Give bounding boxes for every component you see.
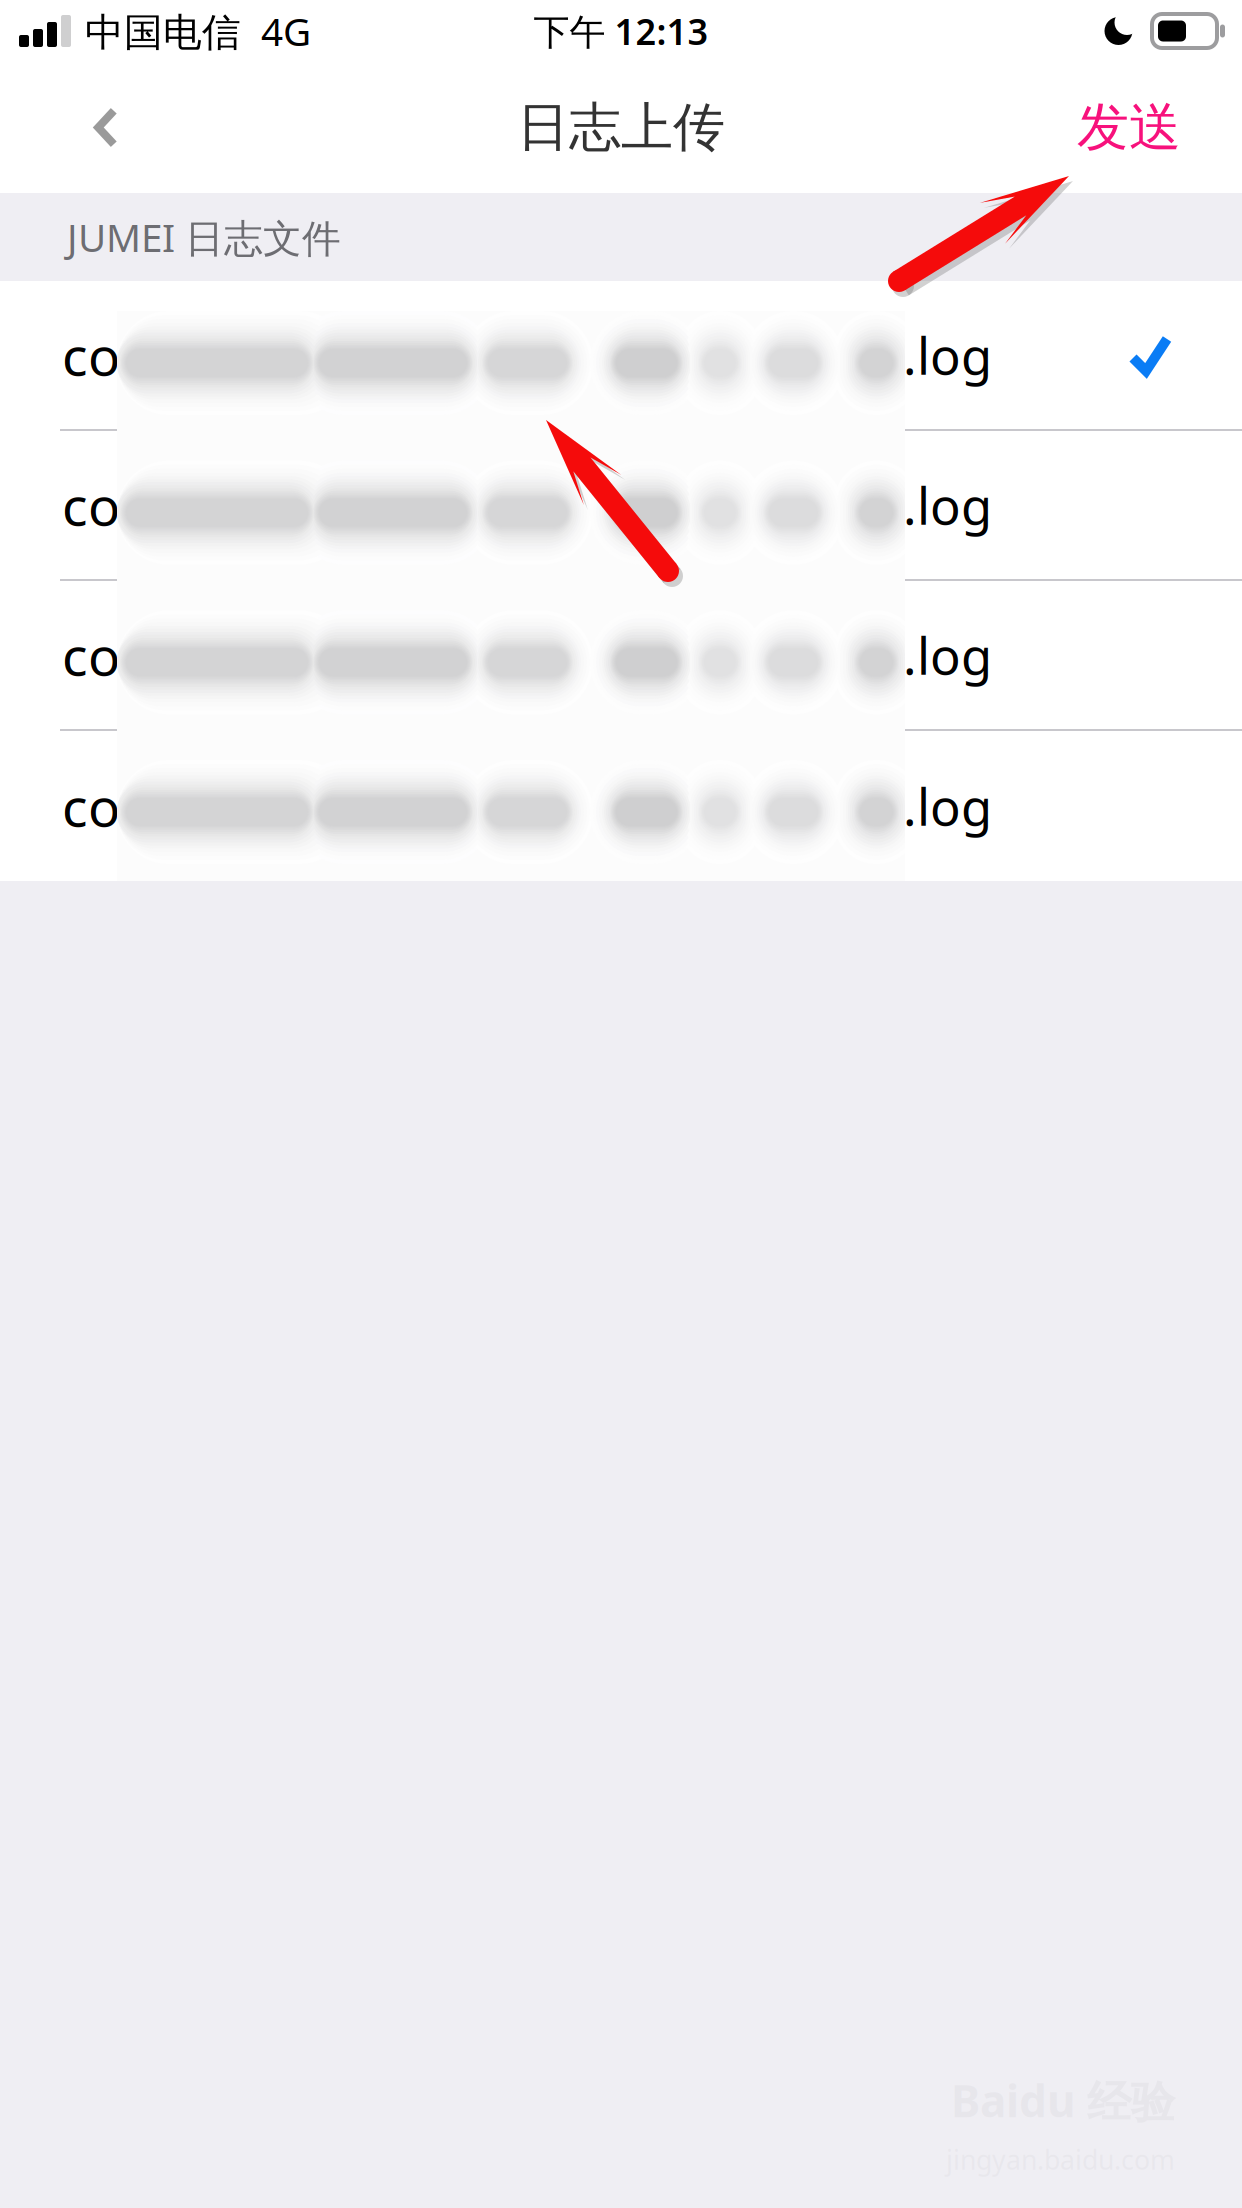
button[interactable]: co	[0, 581, 1242, 731]
staticText: 中国电信 4G	[85, 5, 311, 57]
staticText: co	[62, 470, 120, 540]
button[interactable]: Back	[0, 62, 139, 193]
staticText: .log	[903, 471, 992, 539]
button[interactable]: co	[0, 731, 1242, 881]
staticText: 发送	[1077, 96, 1181, 159]
button[interactable]: 发送	[1021, 62, 1242, 193]
staticText: co	[62, 620, 120, 690]
button[interactable]: co	[0, 431, 1242, 581]
staticText: co	[62, 771, 120, 841]
staticText: .log	[903, 621, 992, 689]
staticText: .log	[903, 772, 992, 840]
staticText: JUMEI 日志文件	[67, 211, 341, 263]
staticText: .log	[903, 321, 992, 389]
staticText: 下午 12:13	[533, 7, 708, 55]
button[interactable]: co	[0, 281, 1242, 431]
staticText: Baidu 经验	[951, 2071, 1175, 2130]
staticText: 日志上传	[517, 96, 725, 159]
staticText: co	[62, 320, 120, 390]
